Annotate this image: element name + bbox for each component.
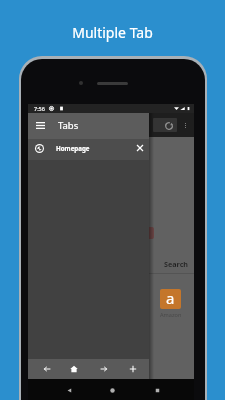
staticText: Multiple Tab [0, 23, 225, 42]
button[interactable]: Back [38, 359, 56, 379]
staticText: Tabs [58, 119, 79, 132]
staticText: Amazon [160, 311, 182, 319]
staticText: 7:56 [34, 105, 45, 112]
button[interactable]: New tab [124, 359, 142, 379]
button[interactable]: Menu [28, 113, 48, 139]
staticText: Homepage [56, 144, 90, 152]
button[interactable]: Home [105, 379, 119, 400]
staticText: Search [164, 259, 189, 269]
button[interactable]: Forward [95, 359, 113, 379]
button[interactable]: a [160, 289, 181, 309]
staticText: a [166, 289, 175, 308]
button[interactable]: More options [180, 113, 190, 137]
button[interactable]: Back [62, 379, 76, 400]
button[interactable]: Homepage [28, 139, 149, 160]
button[interactable]: Recents [150, 379, 164, 400]
button[interactable]: Close tab [131, 139, 149, 160]
button[interactable]: Reload [153, 118, 177, 132]
button[interactable]: Home [65, 359, 83, 379]
